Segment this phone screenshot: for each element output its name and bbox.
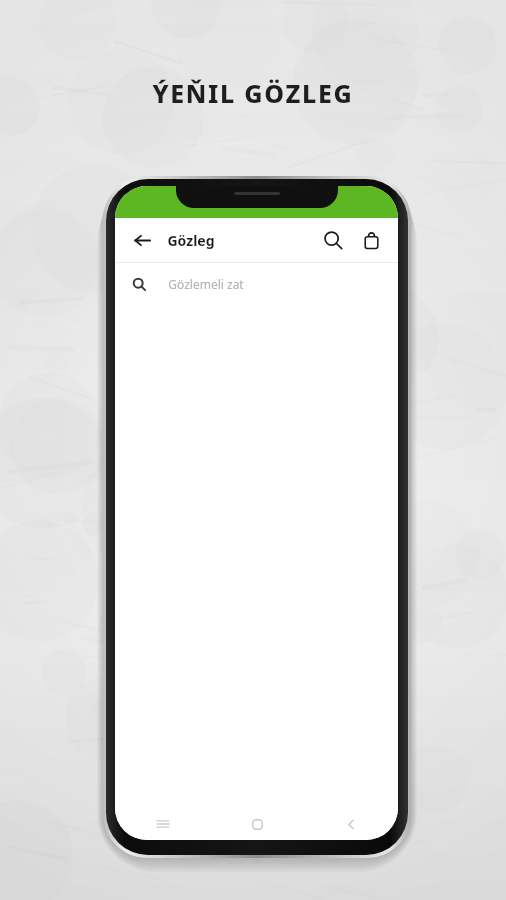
button[interactable]: Shopping bag [354, 223, 388, 257]
button[interactable]: Home [210, 808, 304, 840]
button[interactable]: Search [316, 223, 350, 257]
button[interactable]: Back [304, 808, 398, 840]
button[interactable]: Gözleg [167, 218, 316, 262]
staticText: Gözleg [167, 231, 215, 250]
button[interactable]: Recent apps [115, 808, 210, 840]
staticText: ÝEŇIL GÖZLEG [152, 76, 354, 110]
button[interactable]: Back [125, 223, 159, 257]
button[interactable]: Gözlemeli zat [115, 263, 398, 305]
staticText: Gözlemeli zat [168, 276, 244, 292]
